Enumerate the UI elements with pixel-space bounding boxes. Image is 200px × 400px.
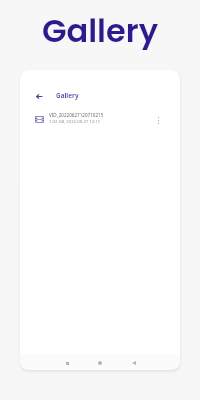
button[interactable]: Home [92, 355, 108, 370]
button[interactable]: Back [126, 355, 142, 370]
button[interactable]: Recent apps [59, 355, 75, 370]
staticText: Gallery [56, 91, 79, 100]
button[interactable]: VID_20220627120710215 [20, 109, 180, 130]
staticText: VID_20220627120710215 [49, 112, 104, 118]
staticText: Gallery [0, 8, 200, 53]
staticText: 1.02 GB, 2022-08-27 12:17 [49, 119, 100, 125]
button[interactable]: More options [151, 113, 165, 127]
button[interactable]: Back [32, 89, 46, 103]
